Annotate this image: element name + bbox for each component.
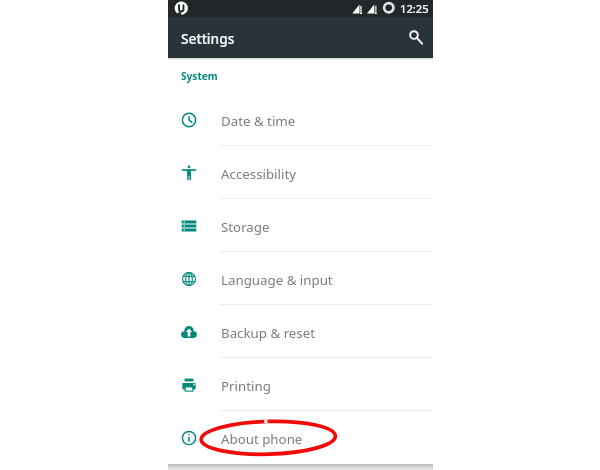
staticText: Settings [181,29,235,48]
button[interactable]: Backup & reset [168,305,433,358]
staticText: 12:25 [400,1,429,16]
staticText: About phone [221,430,303,448]
staticText: Accessibility [221,165,296,183]
button[interactable]: Accessibility [168,146,433,199]
button[interactable]: About phone [168,411,433,464]
button[interactable]: Printing [168,358,433,411]
staticText: Backup & reset [221,324,316,342]
button[interactable]: Search [399,20,429,50]
staticText: Printing [221,377,271,395]
button[interactable]: Date & time [168,93,433,146]
button[interactable]: Language & input [168,252,433,305]
staticText: Date & time [221,112,296,130]
staticText: System [181,69,218,83]
staticText: Language & input [221,271,333,289]
button[interactable]: Storage [168,199,433,252]
staticText: Storage [221,218,270,236]
